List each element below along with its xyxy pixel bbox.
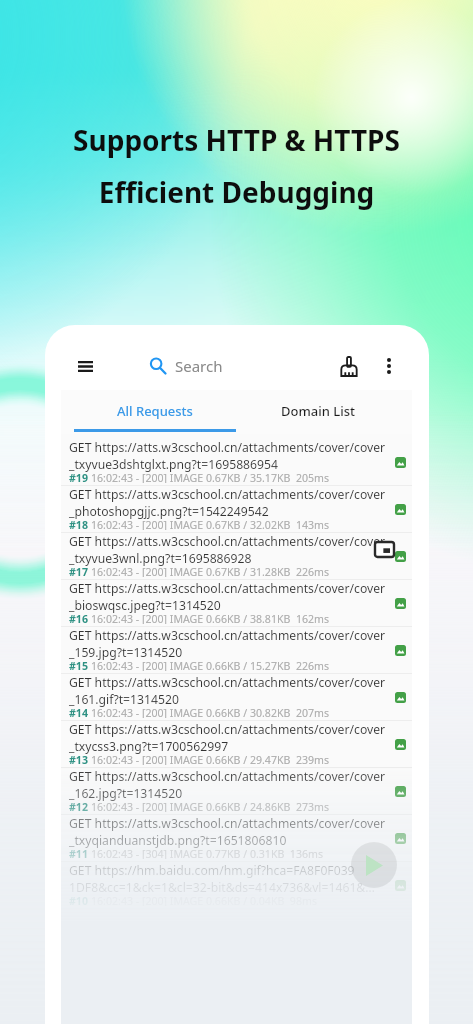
staticText: 1DF8&cc=1&ck=1&cl=32-bit&ds=414x736&vl=1… [69, 879, 375, 896]
staticText: Supports HTTP & HTTPS Efficient Debuggin… [73, 121, 400, 211]
staticText: 16:02:43 - [200] IMAGE 0.66KB / 30.82KB … [91, 706, 330, 718]
staticText: GET https://atts.w3cschool.cn/attachment… [69, 439, 386, 456]
button[interactable]: GET https://atts.w3cschool.cn/attachment… [61, 674, 412, 721]
staticText: _bioswqsc.jpeg?t=1314520 [69, 597, 221, 614]
staticText: GET https://atts.w3cschool.cn/attachment… [69, 674, 386, 691]
button[interactable]: GET https://atts.w3cschool.cn/attachment… [61, 486, 412, 533]
staticText: _txyqianduanstjdb.png?t=1651806810 [69, 832, 287, 849]
staticText: GET https://atts.w3cschool.cn/attachment… [69, 721, 386, 738]
staticText: _txyvue3wnl.png?t=1695886928 [69, 550, 252, 567]
staticText: All Requests [117, 402, 193, 420]
staticText: #17 [69, 565, 88, 577]
staticText: 16:02:43 - [200] IMAGE 0.66KB / 15.27KB … [91, 659, 330, 671]
staticText: 16:02:43 - [200] IMAGE 0.67KB / 31.28KB … [91, 565, 330, 577]
button[interactable]: GET https://atts.w3cschool.cn/attachment… [61, 533, 412, 580]
staticText: _photoshopgjjc.png?t=1542249542 [69, 503, 269, 520]
staticText: Domain List [281, 402, 355, 420]
staticText: _159.jpg?t=1314520 [69, 644, 183, 661]
staticText: #15 [69, 659, 88, 671]
staticText: 16:02:43 - [200] IMAGE 0.66KB / 24.86KB … [91, 800, 330, 812]
staticText: 16:02:43 - [200] IMAGE 0.67KB / 32.02KB … [91, 518, 330, 530]
staticText: #11 [69, 847, 88, 859]
staticText: 16:02:43 - [304] IMAGE 0.77KB / 0.31KB 1… [91, 847, 324, 859]
button[interactable]: GET https://atts.w3cschool.cn/attachment… [61, 627, 412, 674]
staticText: #18 [69, 518, 88, 530]
staticText: _txycss3.png?t=1700562997 [69, 738, 229, 755]
button[interactable]: More options [373, 350, 405, 382]
staticText: #13 [69, 753, 88, 765]
staticText: _161.gif?t=1314520 [69, 691, 179, 708]
button[interactable]: GET https://atts.w3cschool.cn/attachment… [61, 439, 412, 486]
staticText: 16:02:43 - [200] IMAGE 0.67KB / 35.17KB … [91, 471, 330, 483]
staticText: #19 [69, 471, 88, 483]
staticText: 16:02:43 - [200] IMAGE 0.66KB / 29.47KB … [91, 753, 330, 765]
staticText: _txyvue3dshtglxt.png?t=1695886954 [69, 456, 278, 473]
button[interactable]: Menu [68, 349, 102, 383]
button[interactable]: GET https://atts.w3cschool.cn/attachment… [61, 815, 412, 862]
staticText: Search [175, 356, 223, 376]
staticText: #10 [69, 894, 88, 906]
staticText: GET https://atts.w3cschool.cn/attachment… [69, 627, 386, 644]
staticText: #12 [69, 800, 88, 812]
button[interactable]: Picture in picture [375, 542, 394, 557]
button[interactable]: GET https://atts.w3cschool.cn/attachment… [61, 721, 412, 768]
staticText: _162.jpg?t=1314520 [69, 785, 183, 802]
button[interactable]: GET https://atts.w3cschool.cn/attachment… [61, 768, 412, 815]
button[interactable]: Play video [351, 842, 397, 888]
staticText: GET https://atts.w3cschool.cn/attachment… [69, 815, 386, 832]
staticText: #14 [69, 706, 88, 718]
button[interactable]: GET https://atts.w3cschool.cn/attachment… [61, 580, 412, 627]
staticText: GET https://hm.baidu.com/hm.gif?hca=FA8F… [69, 862, 355, 879]
button[interactable]: GET https://hm.baidu.com/hm.gif?hca=FA8F… [61, 862, 412, 909]
button[interactable]: Clear [330, 347, 368, 385]
staticText: #16 [69, 612, 88, 624]
staticText: GET https://atts.w3cschool.cn/attachment… [69, 533, 386, 550]
staticText: GET https://atts.w3cschool.cn/attachment… [69, 768, 386, 785]
button[interactable]: All Requests [74, 390, 236, 434]
staticText: GET https://atts.w3cschool.cn/attachment… [69, 580, 386, 597]
button[interactable]: Domain List [236, 390, 399, 434]
staticText: GET https://atts.w3cschool.cn/attachment… [69, 486, 386, 503]
staticText: 16:02:43 - [200] IMAGE 0.66KB / 38.81KB … [91, 612, 330, 624]
